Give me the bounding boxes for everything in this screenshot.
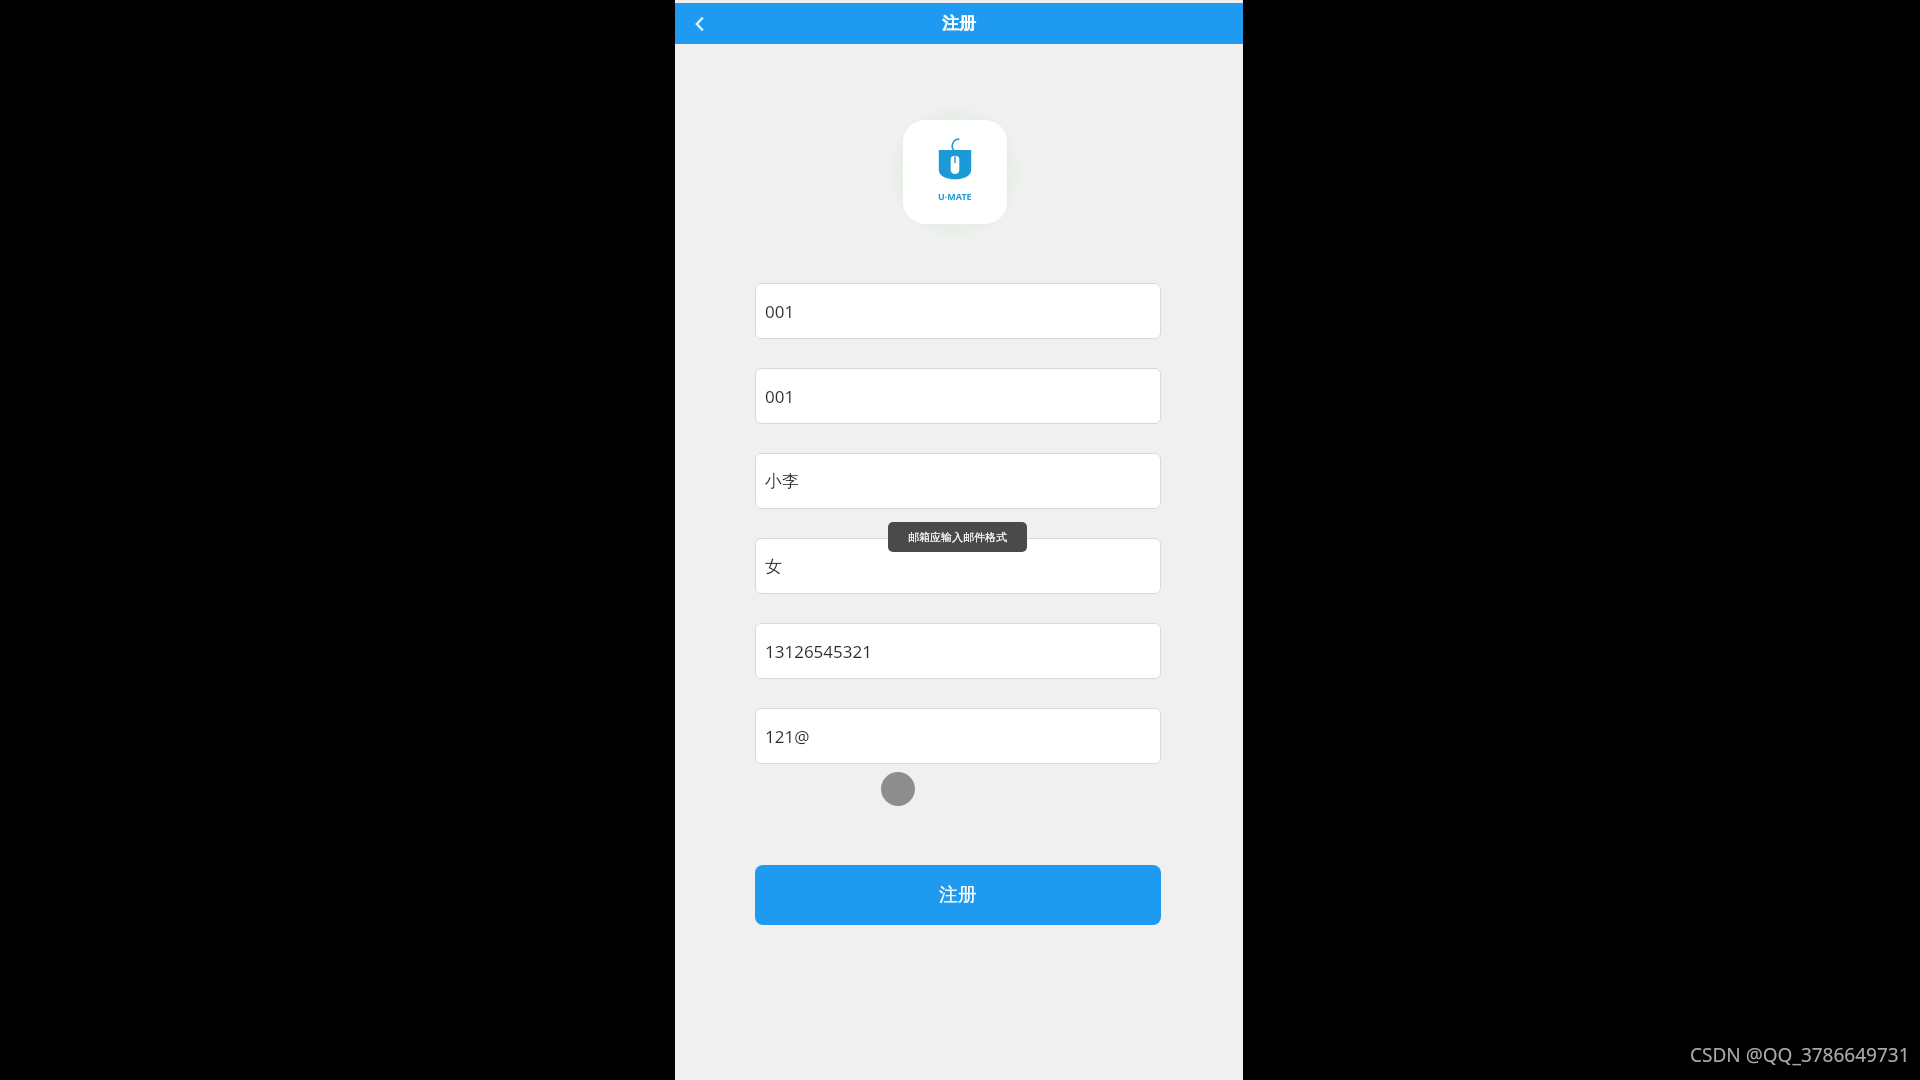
button[interactable]: Back: [681, 3, 719, 44]
button[interactable]: U-MATE logo: [903, 120, 1007, 224]
staticText: 001: [765, 300, 795, 323]
staticText: 注册: [942, 13, 976, 34]
staticText: 邮箱应输入邮件格式: [908, 530, 1007, 544]
button[interactable]: 001: [755, 368, 1161, 424]
staticText: 13126545321: [765, 640, 872, 663]
staticText: U·MATE: [938, 190, 972, 202]
staticText: 女: [765, 556, 782, 577]
staticText: 001: [765, 385, 795, 408]
staticText: CSDN @QQ_3786649731: [1690, 1042, 1910, 1068]
button[interactable]: 001: [755, 283, 1161, 339]
staticText: 121@: [765, 725, 810, 748]
button[interactable]: 注册: [755, 865, 1161, 925]
button[interactable]: 121@: [755, 708, 1161, 764]
staticText: 注册: [939, 883, 977, 907]
button[interactable]: 13126545321: [755, 623, 1161, 679]
staticText: 小李: [765, 471, 799, 492]
button[interactable]: 女: [755, 538, 1161, 594]
button[interactable]: 小李: [755, 453, 1161, 509]
